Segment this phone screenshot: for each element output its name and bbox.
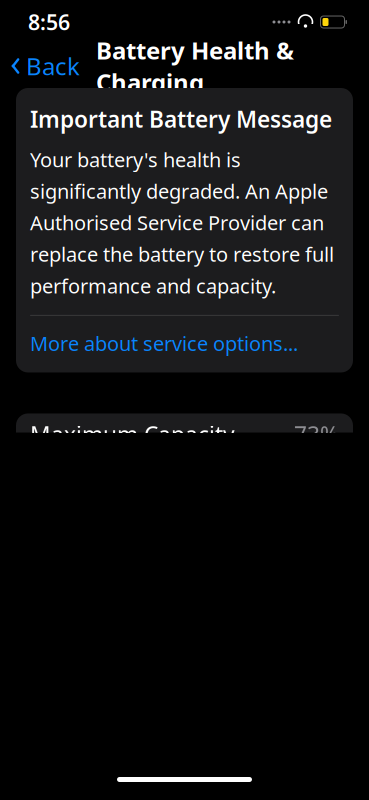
staticText: Maximum Capacity bbox=[30, 419, 235, 449]
staticText: Battery Health & Charging bbox=[96, 34, 294, 98]
button[interactable]: Back bbox=[0, 44, 88, 88]
button[interactable]: Maximum Capacity bbox=[0, 413, 369, 455]
staticText: Important Battery Message bbox=[30, 104, 332, 134]
staticText: 73% bbox=[294, 419, 339, 449]
staticText: Back bbox=[26, 50, 80, 82]
staticText: More about service options... bbox=[30, 330, 298, 356]
button[interactable]: More about service options... bbox=[30, 330, 298, 356]
staticText: To reduce battery ageing, iPhone learns … bbox=[30, 776, 326, 800]
staticText: Your battery's health is significantly d… bbox=[30, 146, 334, 299]
staticText: 8:56 bbox=[28, 8, 70, 36]
